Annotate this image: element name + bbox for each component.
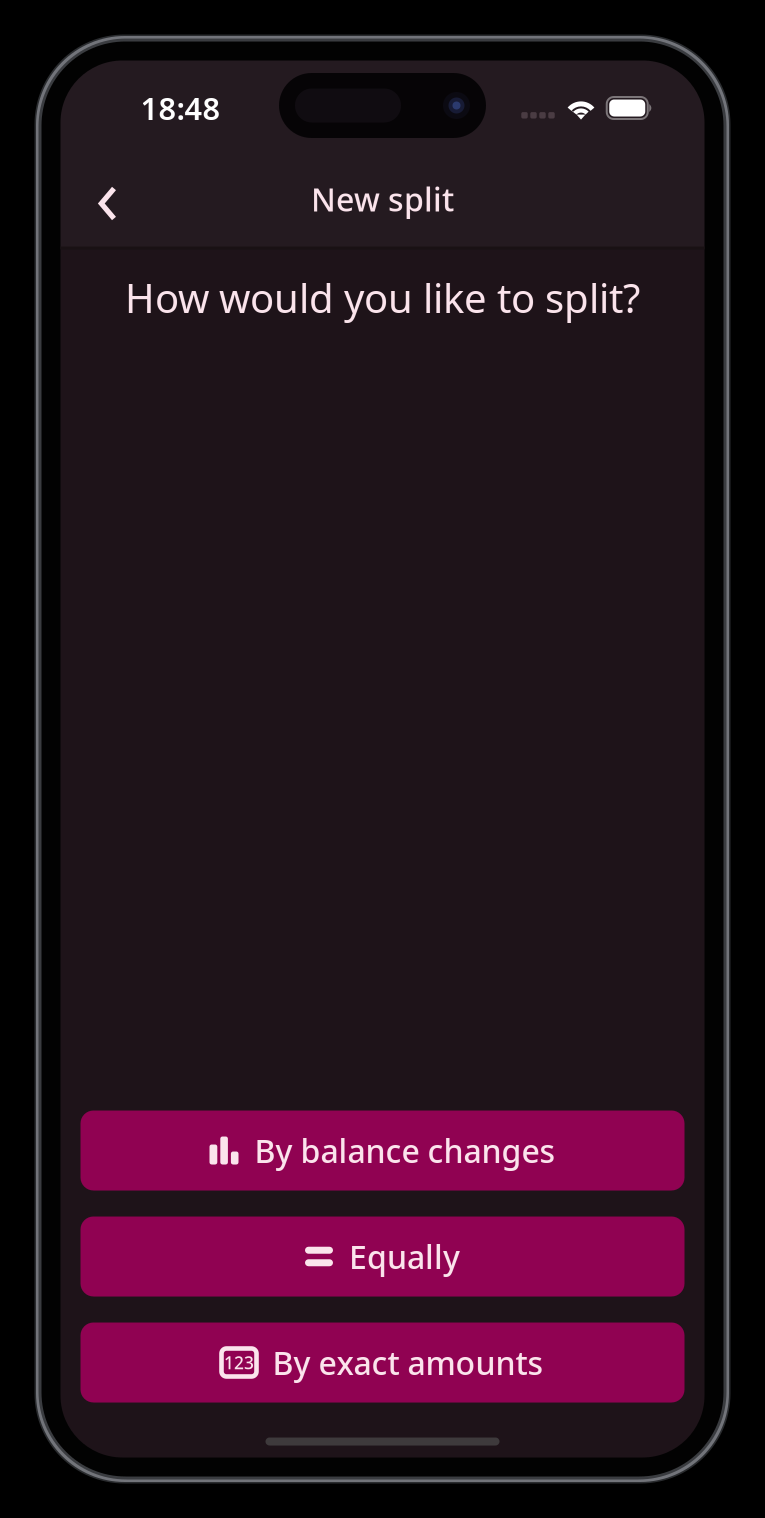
button[interactable]: Equally xyxy=(80,1216,684,1296)
button[interactable]: By balance changes xyxy=(80,1110,684,1190)
staticText: By balance changes xyxy=(254,1129,555,1172)
button[interactable]: Back xyxy=(79,177,135,221)
staticText: 18:48 xyxy=(140,88,220,128)
staticText: Equally xyxy=(349,1235,460,1278)
staticText: New split xyxy=(311,178,454,220)
staticText: 123 xyxy=(224,1351,254,1374)
staticText: By exact amounts xyxy=(272,1341,543,1384)
staticText: How would you like to split? xyxy=(125,271,640,324)
button[interactable]: 123 xyxy=(80,1322,684,1402)
